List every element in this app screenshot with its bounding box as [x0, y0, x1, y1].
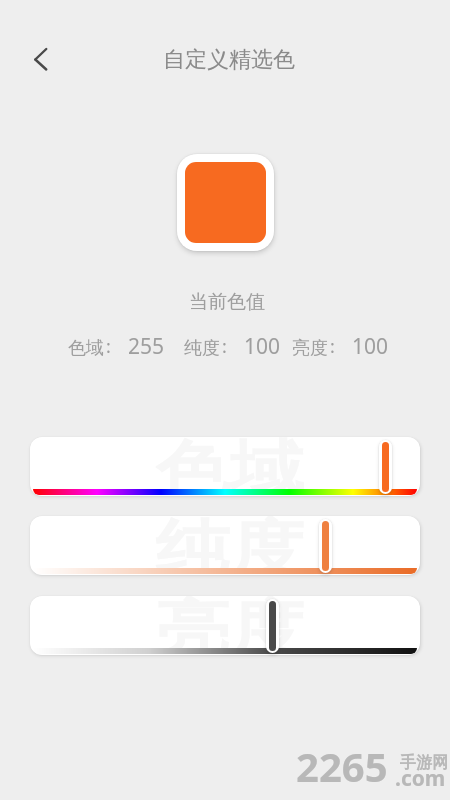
staticText: 亮度 — [156, 596, 304, 649]
staticText: 100 — [352, 332, 389, 361]
button[interactable]: 纯度 — [30, 516, 420, 575]
staticText: 2265 — [296, 739, 388, 793]
staticText: : — [222, 334, 227, 359]
button[interactable]: Slider thumb — [379, 440, 392, 494]
staticText: 255 — [128, 332, 165, 361]
button[interactable]: 色域 — [30, 437, 420, 496]
button[interactable]: Back — [18, 38, 60, 80]
staticText: 色域 — [156, 437, 304, 490]
staticText: 自定义精选色 — [163, 46, 295, 74]
staticText: .com — [395, 764, 446, 793]
staticText: 亮度 — [292, 337, 328, 360]
staticText: : — [330, 334, 335, 359]
staticText: 纯度 — [156, 516, 304, 569]
staticText: 色域 — [68, 337, 104, 360]
button[interactable]: Slider thumb — [319, 519, 332, 573]
button[interactable] — [177, 154, 274, 251]
staticText: 手游网 — [400, 753, 448, 773]
staticText: : — [106, 334, 111, 359]
staticText: 纯度 — [184, 337, 220, 360]
button[interactable]: 亮度 — [30, 596, 420, 655]
staticText: 100 — [244, 332, 281, 361]
button[interactable]: Slider thumb — [266, 599, 279, 653]
staticText: 当前色值 — [189, 290, 265, 314]
